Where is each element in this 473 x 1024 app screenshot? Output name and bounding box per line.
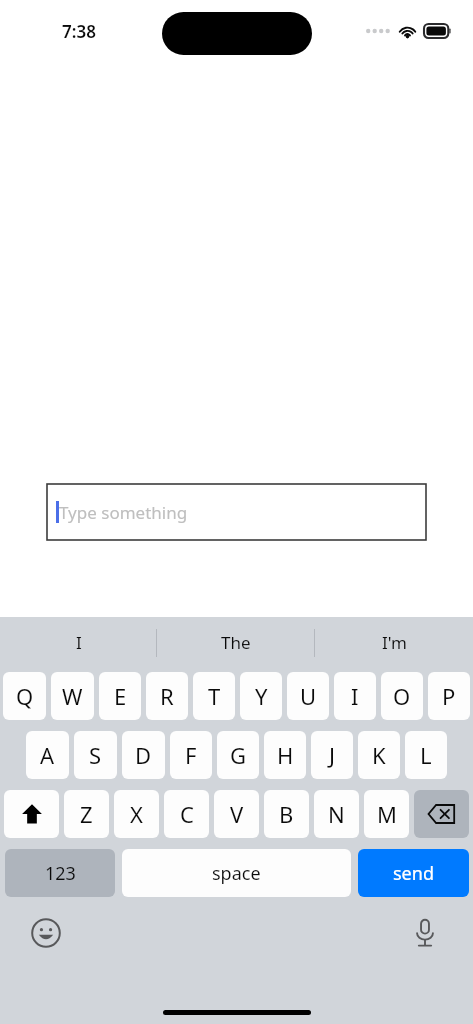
staticText: I'm [382,631,407,654]
button[interactable]: E [99,672,141,720]
button[interactable]: K [358,731,400,779]
button[interactable]: S [74,731,117,779]
button[interactable]: space [122,849,351,897]
staticText: 123 [45,861,76,886]
button[interactable]: L [405,731,447,779]
button[interactable]: J [311,731,353,779]
button[interactable]: The [157,617,315,668]
staticText: Type something [59,501,188,524]
button[interactable]: 123 [5,849,115,897]
staticText: H [277,740,294,770]
staticText: F [185,740,197,770]
button[interactable]: N [314,790,359,838]
staticText: M [377,799,397,829]
button[interactable]: B [264,790,309,838]
staticText: L [420,740,432,770]
button[interactable]: send [358,849,469,897]
button[interactable]: A [26,731,69,779]
button[interactable]: O [381,672,423,720]
staticText: Q [16,681,34,711]
staticText: W [62,681,83,711]
staticText: send [393,861,434,886]
staticText: B [279,799,294,829]
staticText: D [135,740,152,770]
staticText: A [40,740,55,770]
staticText: E [114,681,127,711]
button[interactable]: F [170,731,212,779]
staticText: C [180,799,194,829]
button[interactable]: G [217,731,259,779]
staticText: R [160,681,174,711]
staticText: The [221,631,251,654]
button[interactable]: Dictation [407,915,443,951]
button[interactable]: U [287,672,329,720]
staticText: J [329,740,336,770]
staticText: X [130,799,143,829]
staticText: G [230,740,247,770]
button[interactable]: W [51,672,94,720]
staticText: I [351,681,359,711]
staticText: N [328,799,345,829]
button[interactable]: H [264,731,306,779]
button[interactable]: Q [3,672,46,720]
button[interactable]: Z [64,790,109,838]
button[interactable]: Y [240,672,282,720]
button[interactable]: I [0,617,157,668]
button[interactable]: C [164,790,209,838]
button[interactable]: Emoji [28,915,64,951]
staticText: P [442,681,456,711]
button[interactable]: D [122,731,165,779]
staticText: O [393,681,411,711]
button[interactable]: P [428,672,470,720]
button[interactable]: Delete [414,790,469,838]
staticText: K [372,740,386,770]
staticText: I [76,631,82,654]
button[interactable]: Type something [47,484,426,540]
button[interactable]: R [146,672,188,720]
staticText: V [230,799,244,829]
staticText: Y [255,681,268,711]
staticText: T [208,681,221,711]
staticText: space [212,861,261,886]
button[interactable]: M [364,790,409,838]
staticText: S [89,740,102,770]
button[interactable]: V [214,790,259,838]
staticText: Z [80,799,93,829]
staticText: U [300,681,317,711]
button[interactable]: I'm [315,617,473,668]
staticText: 7:38 [62,20,96,43]
button[interactable]: X [114,790,159,838]
button[interactable]: Shift [4,790,59,838]
button[interactable]: I [334,672,376,720]
button[interactable]: T [193,672,235,720]
